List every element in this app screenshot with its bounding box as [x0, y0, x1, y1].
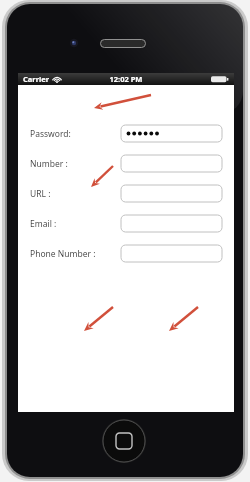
button[interactable]: Password input field	[121, 125, 222, 142]
button[interactable]: Home button	[102, 419, 146, 463]
button[interactable]: Phone Number input field	[121, 245, 222, 262]
button[interactable]: URL input field	[121, 185, 222, 202]
button[interactable]: Number input field	[121, 155, 222, 172]
button[interactable]: Email input field	[121, 215, 222, 232]
